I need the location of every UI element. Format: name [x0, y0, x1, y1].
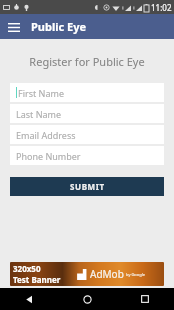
button[interactable]: 320x50 [10, 262, 164, 286]
button[interactable]: Home [58, 288, 116, 310]
button[interactable]: Back [0, 288, 58, 310]
button[interactable]: Recent apps [116, 288, 174, 310]
staticText: by Google [126, 272, 145, 277]
staticText: First Name [18, 87, 64, 99]
button[interactable]: Last Name [10, 104, 164, 123]
staticText: SUBMIT [70, 181, 105, 192]
button[interactable]: Open navigation menu [7, 20, 21, 34]
button[interactable]: Email Address [10, 125, 164, 144]
staticText: Test Banner [13, 274, 61, 285]
staticText: Email Address [16, 129, 76, 141]
button[interactable]: SUBMIT [10, 177, 164, 196]
staticText: Phone Number [16, 150, 81, 162]
staticText: Register for Public Eye [0, 54, 174, 69]
staticText: AdMob [90, 267, 124, 281]
staticText: Last Name [16, 108, 62, 120]
staticText: Public Eye [31, 19, 87, 34]
staticText: 11:02 [151, 2, 172, 13]
staticText: 320x50 [13, 263, 41, 274]
button[interactable]: Phone Number [10, 146, 164, 165]
button[interactable]: First Name [10, 83, 164, 102]
